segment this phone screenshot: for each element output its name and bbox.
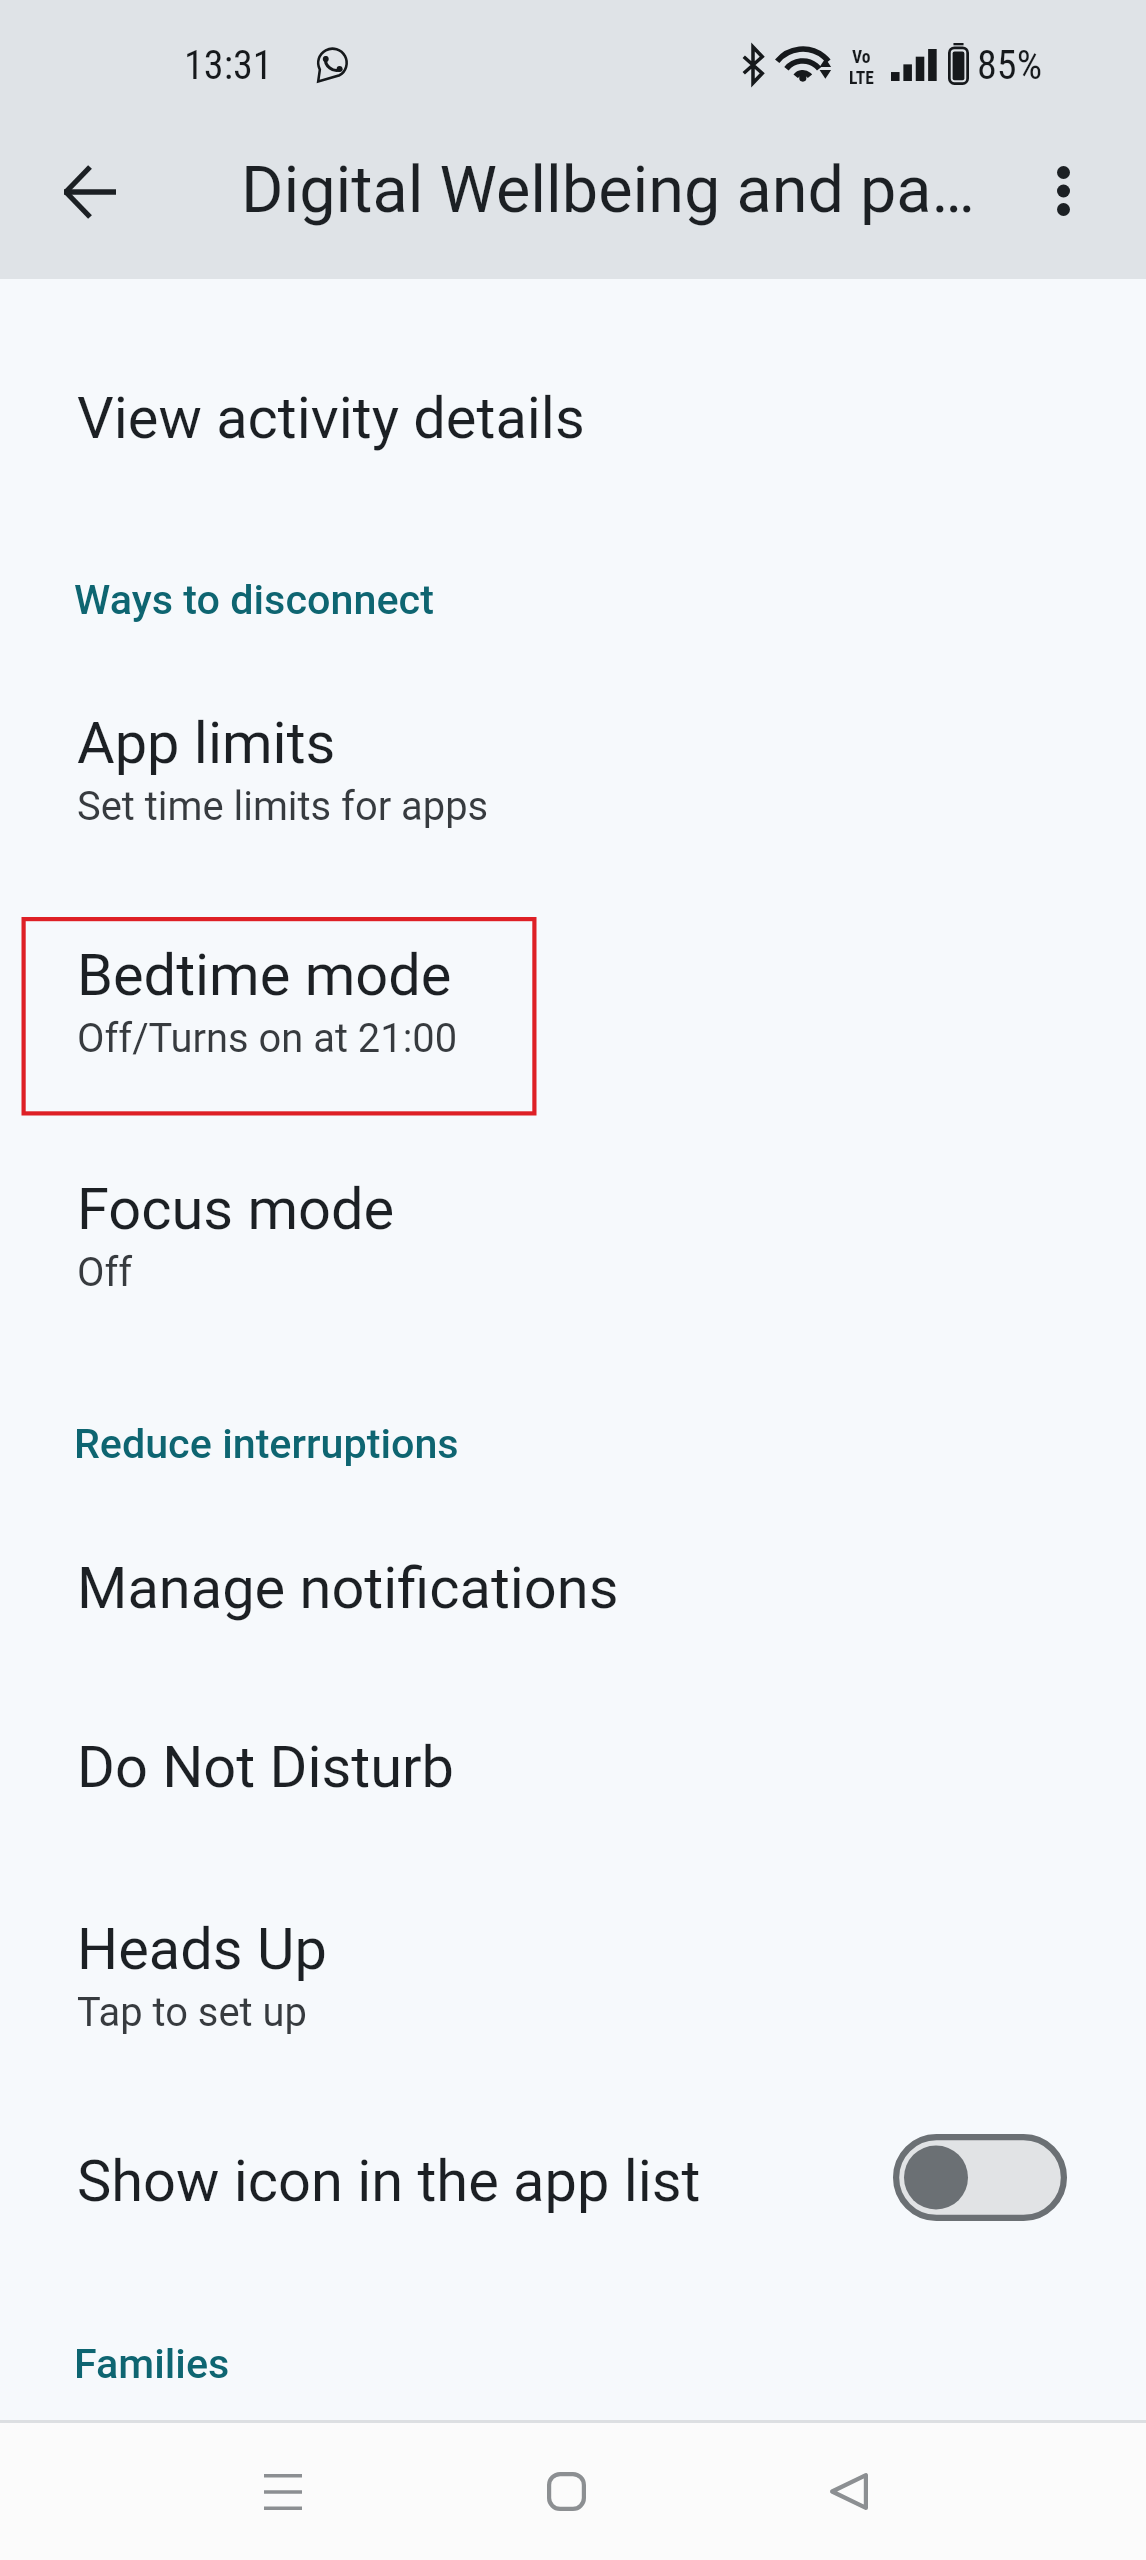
button[interactable]: Home — [499, 2423, 633, 2560]
staticText: Families — [74, 2340, 230, 2388]
staticText: App limits — [77, 709, 336, 777]
staticText: Set time limits for apps — [77, 783, 489, 830]
staticText: Digital Wellbeing and pa… — [241, 152, 975, 228]
button[interactable]: Recent apps — [216, 2423, 350, 2560]
staticText: Bedtime mode — [77, 941, 452, 1009]
button[interactable]: Do Not Disturb — [0, 1707, 1146, 1806]
staticText: 85% — [977, 42, 1043, 89]
button[interactable]: Show icon in the app list — [0, 2108, 1146, 2248]
staticText: Off — [77, 1249, 133, 1296]
button[interactable]: Back — [782, 2423, 916, 2560]
button[interactable]: Heads Up — [0, 1889, 1146, 2049]
staticText: Off/Turns on at 21:00 — [77, 1015, 458, 1062]
button[interactable]: Focus mode — [0, 1149, 1146, 1309]
staticText: Vo — [852, 47, 871, 68]
staticText: View activity details — [77, 384, 585, 452]
staticText: 13:31 — [184, 42, 273, 89]
button[interactable]: App limits — [0, 683, 1146, 843]
staticText: Reduce interruptions — [74, 1420, 459, 1468]
staticText: Focus mode — [77, 1175, 395, 1243]
button[interactable]: View activity details — [0, 358, 1146, 457]
staticText: Ways to disconnect — [74, 576, 434, 624]
button[interactable]: Navigate up — [34, 136, 146, 248]
staticText: Show icon in the app list — [77, 2147, 701, 2215]
staticText: Tap to set up — [77, 1989, 307, 2036]
staticText: Heads Up — [77, 1915, 327, 1983]
button[interactable]: Bedtime mode — [0, 915, 1146, 1075]
button[interactable]: Manage notifications — [0, 1528, 1146, 1627]
staticText: Manage notifications — [77, 1554, 619, 1622]
staticText: LTE — [849, 68, 874, 89]
staticText: Do Not Disturb — [77, 1733, 454, 1801]
button[interactable]: More options — [1007, 135, 1119, 247]
